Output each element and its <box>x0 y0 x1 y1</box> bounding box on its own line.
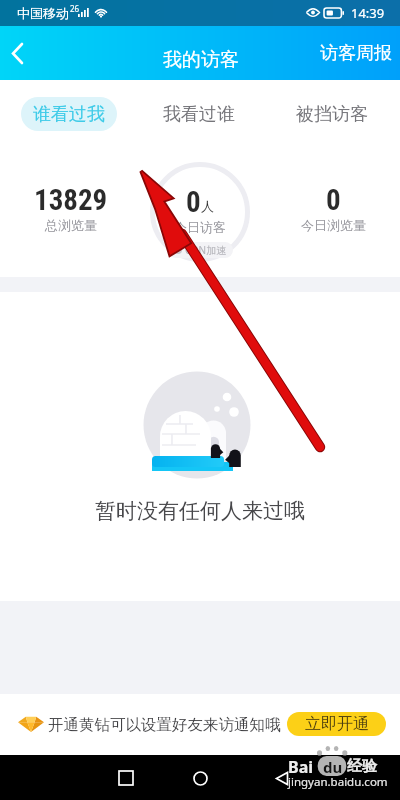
staticText: jingyan.baidu.com <box>288 774 388 790</box>
staticText: 立即开通 <box>305 714 369 734</box>
button[interactable]: 被挡访客 <box>288 97 376 131</box>
staticText: 谁看过我 <box>33 103 105 126</box>
button[interactable]: Home <box>180 758 220 798</box>
staticText: CDN加速 <box>185 243 227 257</box>
staticText: 14:39 <box>351 4 385 22</box>
staticText: 人 <box>201 198 214 214</box>
staticText: 中国移动 <box>17 5 69 21</box>
button[interactable]: 我看过谁 <box>155 97 243 131</box>
staticText: 26 <box>70 3 80 14</box>
staticText: 访客周报 <box>320 42 392 65</box>
staticText: 13829 <box>34 183 108 217</box>
button[interactable]: Back <box>0 31 39 75</box>
staticText: 开通黄钻可以设置好友来访通知哦 <box>48 715 281 735</box>
staticText: 0 <box>326 183 341 217</box>
staticText: 0 <box>186 185 201 219</box>
button[interactable]: 立即开通 <box>287 712 386 736</box>
button[interactable]: Recents <box>106 758 146 798</box>
staticText: 暂时没有任何人来过哦 <box>95 498 305 524</box>
staticText: 今日访客 <box>174 219 226 235</box>
staticText: 被挡访客 <box>296 103 368 126</box>
staticText: 我看过谁 <box>163 103 235 126</box>
button[interactable]: CDN加速 <box>168 242 233 258</box>
staticText: Bai <box>288 756 314 778</box>
staticText: 总浏览量 <box>45 217 97 233</box>
staticText: 我的访客 <box>163 48 239 72</box>
button[interactable]: Back <box>262 758 302 798</box>
staticText: 今日浏览量 <box>301 217 366 233</box>
button[interactable]: 谁看过我 <box>21 97 117 131</box>
staticText: du <box>323 757 343 777</box>
button[interactable]: 访客周报 <box>310 26 382 80</box>
staticText: 经验 <box>347 757 377 776</box>
